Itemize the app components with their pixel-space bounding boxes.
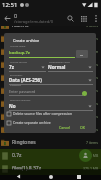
staticText: Alarms bbox=[12, 22, 86, 29]
staticText: Delete source files after compression bbox=[13, 111, 72, 116]
button[interactable]: OK bbox=[78, 123, 88, 132]
staticText: Split into volumes: bbox=[10, 98, 31, 101]
staticText: DCIM bbox=[12, 48, 88, 55]
staticText: 0.7z bbox=[12, 152, 87, 159]
button[interactable]: Download bbox=[0, 71, 101, 84]
staticText: 7 items bbox=[86, 140, 99, 145]
staticText: files(1).8.37z bbox=[12, 165, 83, 172]
staticText: 12 items bbox=[84, 75, 99, 80]
staticText: Password bbox=[10, 83, 21, 86]
staticText: 9 items bbox=[86, 127, 99, 132]
staticText: Cancel bbox=[59, 125, 71, 130]
button[interactable]: Music bbox=[0, 97, 101, 110]
staticText: ... bbox=[80, 52, 84, 57]
button[interactable]: Back bbox=[14, 172, 23, 180]
button[interactable]: Back bbox=[0, 11, 14, 25]
staticText: Create separate archive bbox=[13, 120, 51, 125]
staticText: Normal bbox=[48, 64, 66, 70]
staticText: OK bbox=[80, 125, 86, 130]
staticText: 12:51 bbox=[2, 1, 18, 9]
button[interactable]: More options bbox=[90, 13, 101, 24]
button[interactable]: Home bbox=[46, 172, 55, 180]
staticText: Enter password bbox=[9, 89, 36, 94]
staticText: Pictures bbox=[12, 126, 86, 133]
staticText: /storage/emulated/0 bbox=[14, 19, 53, 24]
button[interactable]: Add bbox=[79, 149, 92, 162]
staticText: 5 items bbox=[86, 101, 99, 106]
button[interactable]: DCIM bbox=[0, 45, 101, 58]
staticText: Download bbox=[12, 74, 84, 81]
staticText: Create archive bbox=[13, 38, 40, 43]
staticText: Android bbox=[12, 35, 86, 42]
button[interactable]: Ringtones bbox=[0, 136, 101, 149]
staticText: Data (AES-256) bbox=[9, 77, 42, 83]
button[interactable]: Delete source files after compression bbox=[7, 110, 72, 117]
button[interactable]: Movies bbox=[0, 84, 101, 97]
staticText: Movies bbox=[12, 87, 86, 94]
staticText: 7z bbox=[9, 64, 14, 70]
button[interactable]: Show password bbox=[82, 91, 87, 96]
staticText: 0 items bbox=[86, 88, 99, 93]
staticText: 8 items bbox=[86, 62, 99, 67]
staticText: Archive format: bbox=[10, 60, 28, 63]
staticText: 375.1 MB bbox=[83, 166, 99, 171]
staticText: Archive name bbox=[10, 44, 26, 47]
staticText: backup.7z bbox=[9, 50, 30, 56]
staticText: Ringtones bbox=[12, 139, 86, 146]
button[interactable]: Search bbox=[64, 12, 77, 25]
button[interactable]: Pictures bbox=[0, 123, 101, 136]
button[interactable]: Cancel bbox=[57, 123, 73, 132]
staticText: 1 item bbox=[88, 49, 99, 54]
button[interactable]: Notifications bbox=[0, 110, 101, 123]
button[interactable]: Documents bbox=[0, 58, 101, 71]
button[interactable]: Create separate archive bbox=[7, 119, 51, 126]
button[interactable]: Browse bbox=[76, 50, 88, 58]
staticText: Encryption: bbox=[10, 73, 23, 76]
staticText: 3 items bbox=[86, 23, 99, 28]
staticText: 4 items bbox=[86, 114, 99, 119]
staticText: No bbox=[9, 103, 16, 109]
staticText: Compression level: bbox=[49, 60, 71, 63]
staticText: Notifications bbox=[12, 113, 86, 120]
staticText: 2 items bbox=[86, 36, 99, 41]
button[interactable]: Grid view bbox=[77, 12, 90, 25]
staticText: Music bbox=[12, 100, 86, 107]
button[interactable]: Recents bbox=[74, 172, 83, 180]
button[interactable]: files(1).8.37z bbox=[0, 162, 101, 175]
staticText: 2.9 MB bbox=[87, 153, 99, 158]
staticText: Documents bbox=[12, 61, 86, 68]
staticText: 0 bbox=[14, 12, 18, 19]
button[interactable]: Android bbox=[0, 32, 101, 45]
button[interactable]: 0.7z bbox=[0, 149, 101, 162]
button[interactable]: Alarms bbox=[0, 19, 101, 32]
